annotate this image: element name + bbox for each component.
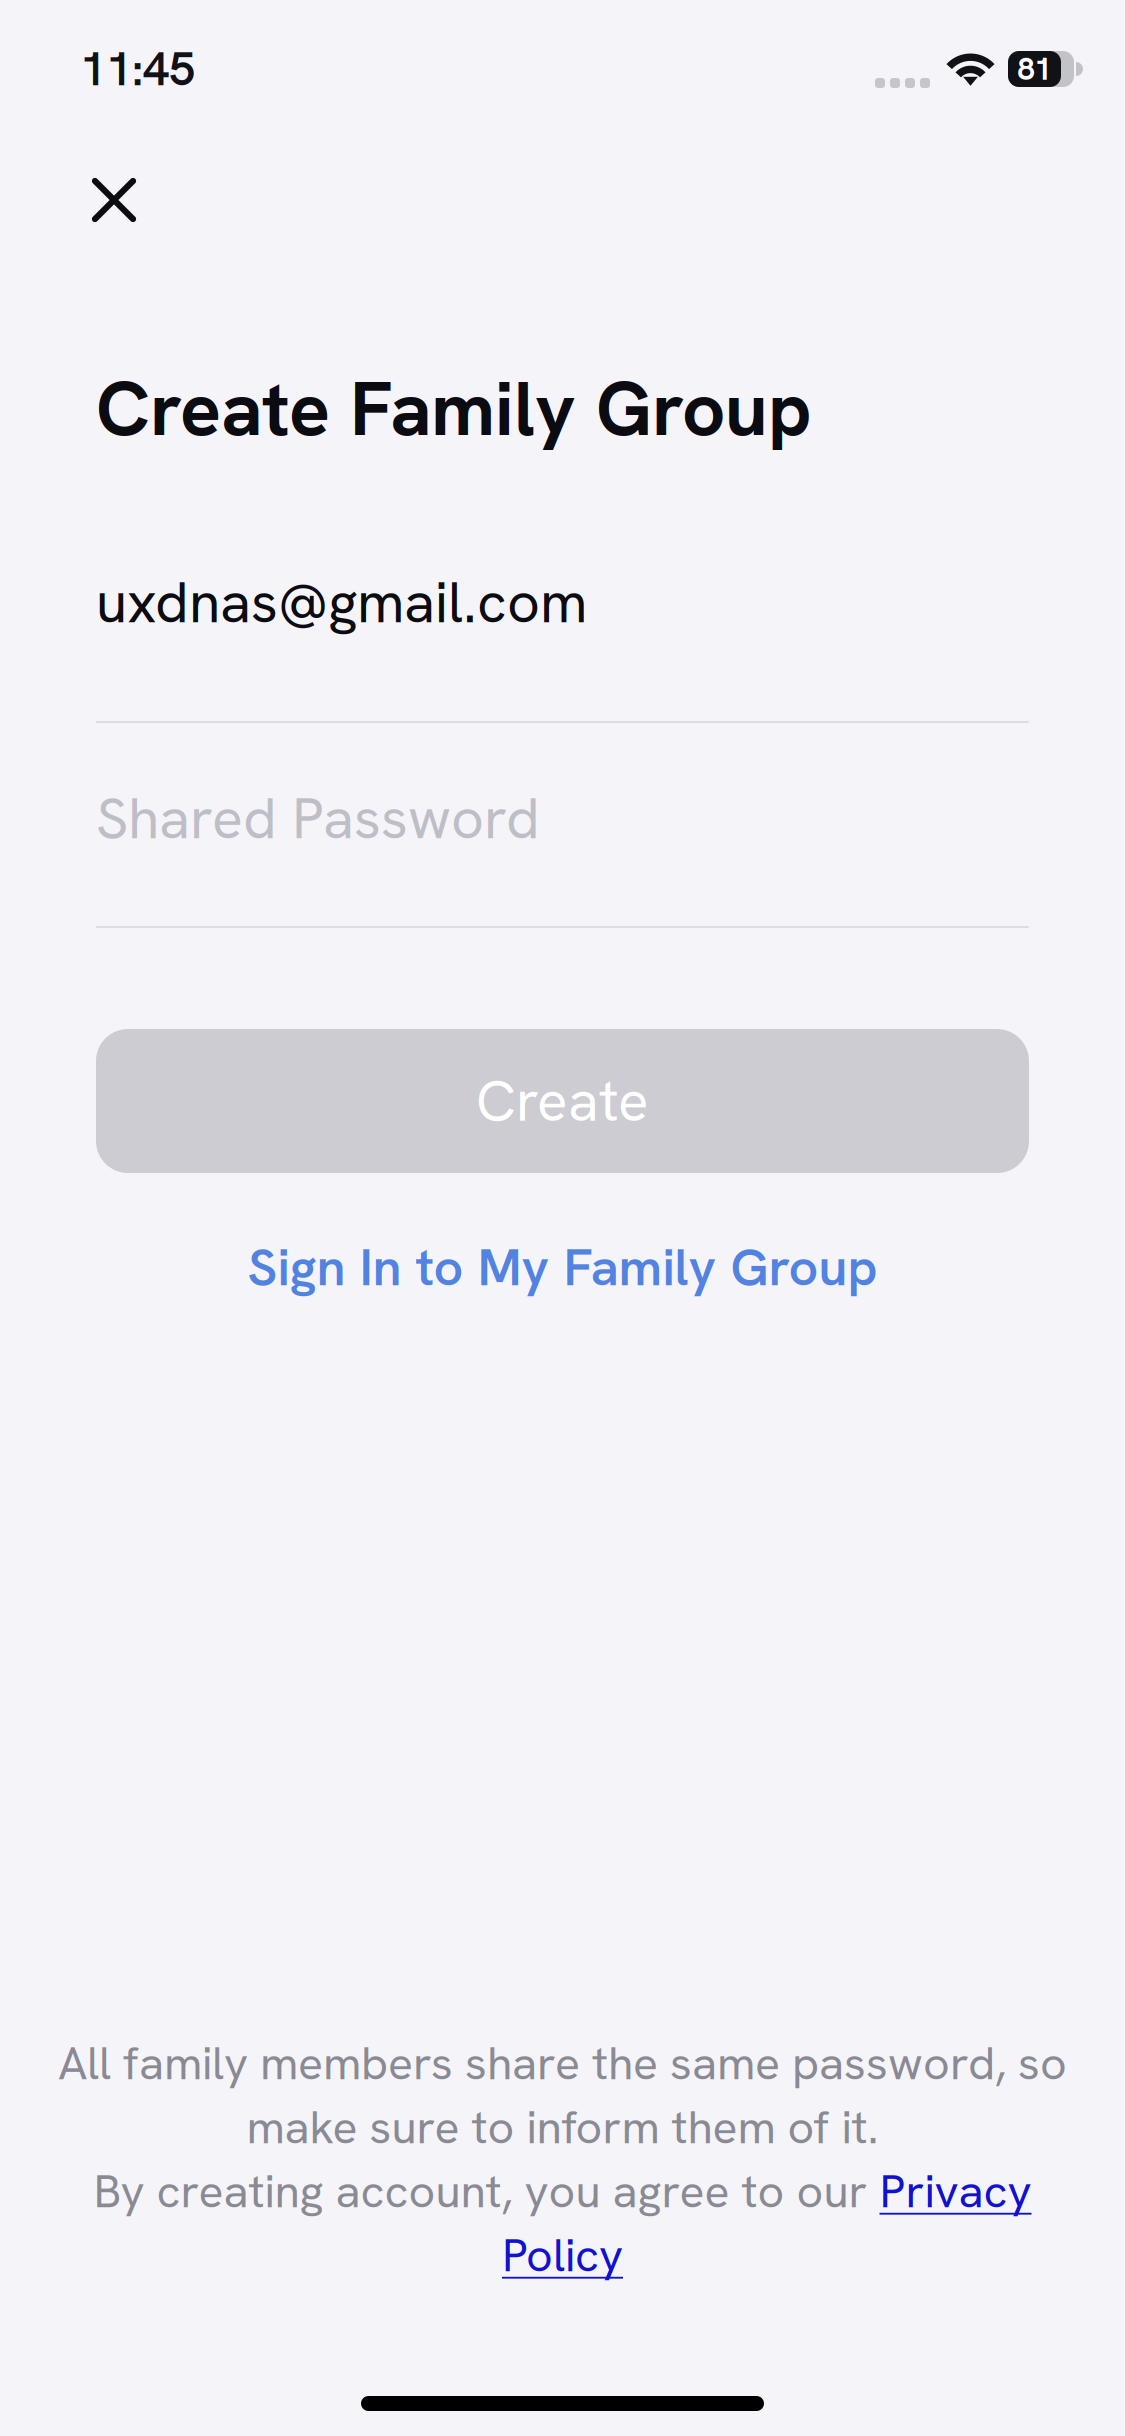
staticText: 11:45 bbox=[80, 39, 195, 99]
staticText: Policy bbox=[502, 2225, 623, 2285]
staticText: Privacy bbox=[879, 2161, 1031, 2221]
button[interactable]: Create bbox=[96, 1029, 1029, 1173]
staticText: By creating account, you agree to our bbox=[93, 2161, 879, 2221]
staticText: uxdnas@gmail.com bbox=[96, 565, 587, 640]
button[interactable]: Close bbox=[0, 93, 180, 244]
button[interactable]: Sign In to My Family Group bbox=[96, 1221, 1029, 1313]
button[interactable]: Privacy bbox=[879, 2161, 1031, 2221]
staticText: 81 bbox=[1017, 49, 1051, 89]
staticText: Shared Password bbox=[96, 781, 540, 856]
staticText: All family members share the same passwo… bbox=[58, 2033, 1067, 2093]
staticText: Sign In to My Family Group bbox=[247, 1233, 877, 1301]
staticText: make sure to inform them of it. bbox=[246, 2097, 878, 2157]
button[interactable]: Shared Password bbox=[96, 762, 1029, 928]
button[interactable]: uxdnas@gmail.com bbox=[96, 557, 1029, 723]
button[interactable]: Policy bbox=[502, 2223, 623, 2287]
staticText: Create Family Group bbox=[96, 359, 812, 458]
staticText: Create bbox=[476, 1064, 649, 1138]
